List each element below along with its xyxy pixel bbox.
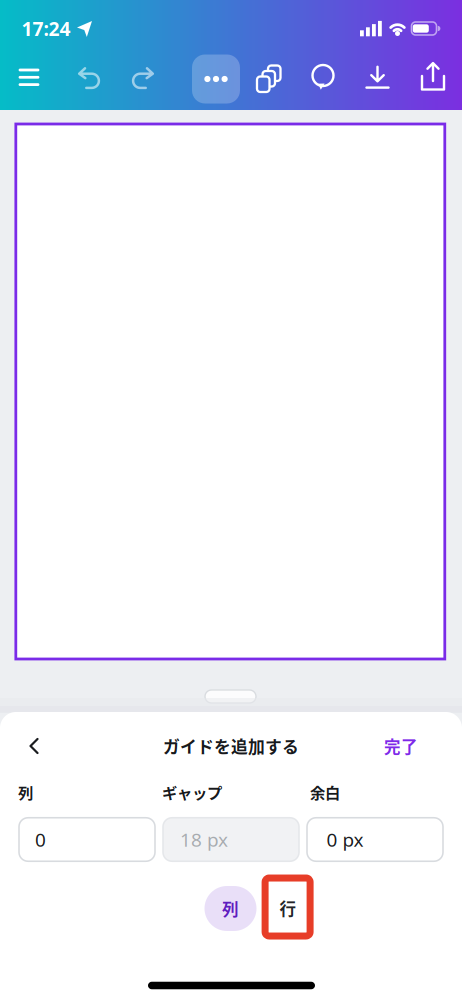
button[interactable]: Share <box>421 62 445 90</box>
button[interactable]: Redo <box>131 67 155 89</box>
staticText: 完了 <box>384 734 418 758</box>
button[interactable]: Pages <box>257 64 283 92</box>
staticText: ギャップ <box>162 781 222 803</box>
button[interactable]: Comments <box>310 63 336 91</box>
button[interactable]: 18 px <box>163 818 299 861</box>
staticText: 18 px <box>180 827 228 852</box>
button[interactable]: More options <box>192 54 240 103</box>
button[interactable]: Menu <box>18 68 40 86</box>
button[interactable]: 0 px <box>307 818 443 861</box>
staticText: 余白 <box>310 781 340 803</box>
staticText: 17:24 <box>21 15 70 42</box>
button[interactable]: 行 <box>262 885 314 930</box>
button[interactable]: Download <box>365 66 389 90</box>
staticText: 列 <box>18 781 33 803</box>
button[interactable]: 0 <box>19 818 155 861</box>
button[interactable]: Back <box>26 736 42 756</box>
button[interactable]: Undo <box>77 67 101 89</box>
button[interactable]: 完了 <box>384 734 418 758</box>
staticText: 0 px <box>326 827 363 852</box>
button[interactable]: 列 <box>204 886 256 931</box>
staticText: 0 <box>35 827 46 852</box>
staticText: 列 <box>222 896 239 920</box>
staticText: ガイドを追加する <box>163 734 299 758</box>
staticText: 行 <box>279 896 296 920</box>
